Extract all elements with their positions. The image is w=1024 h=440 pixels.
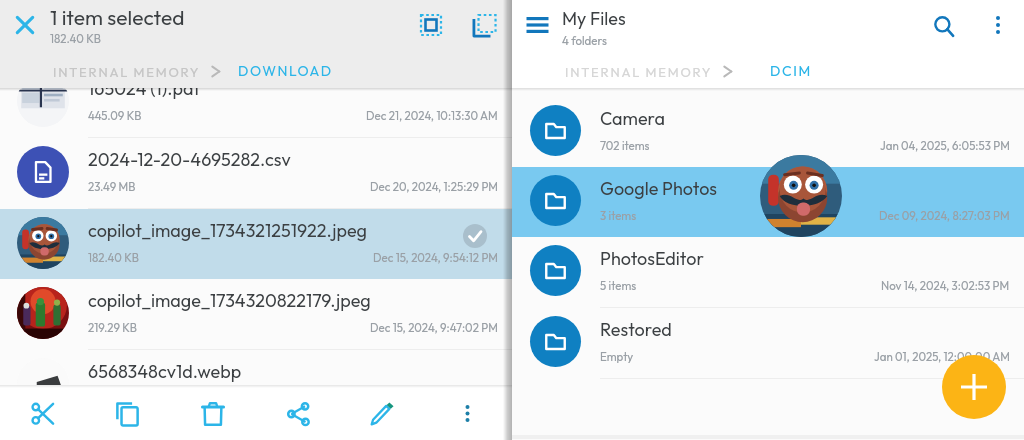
staticText: 23.49 MB: [88, 179, 136, 193]
button[interactable]: DOWNLOAD: [238, 62, 333, 80]
button[interactable]: Select all: [406, 0, 456, 50]
button[interactable]: DCIM: [770, 62, 812, 80]
button[interactable]: Google Photos: [512, 167, 1024, 237]
staticText: copilot_image_1734320822179.jpeg: [88, 289, 600, 312]
staticText: 182.40 KB: [50, 31, 101, 45]
button[interactable]: Close: [0, 0, 50, 50]
button[interactable]: PhotosEditor: [512, 237, 1024, 307]
button[interactable]: Restored: [512, 308, 1024, 378]
staticText: Restored: [600, 318, 1024, 341]
button[interactable]: Cut: [0, 385, 85, 440]
staticText: Google Photos: [600, 177, 1024, 200]
staticText: 182.40 KB: [88, 250, 139, 264]
button[interactable]: More options: [425, 385, 510, 440]
button[interactable]: 6568348cv1d.webp: [0, 350, 512, 420]
staticText: Empty: [600, 349, 634, 363]
button[interactable]: More options: [976, 1, 1020, 49]
staticText: copilot_image_1734321251922.jpeg: [88, 219, 600, 242]
button[interactable]: 2024-12-20-4695282.csv: [0, 138, 512, 208]
button[interactable]: Rename: [340, 385, 425, 440]
button[interactable]: Share: [255, 385, 340, 440]
staticText: Dec 20, 2024, 1:25:29 PM: [370, 179, 498, 193]
staticText: Dec 15, 2024, 9:47:02 PM: [370, 320, 498, 334]
staticText: 702 items: [600, 138, 650, 152]
staticText: 1 item selected: [50, 4, 185, 30]
staticText: Dec 09, 2024, 8:27:03 PM: [879, 208, 1010, 222]
staticText: 165024 (1).pdf: [88, 77, 600, 100]
staticText: 219.29 KB: [88, 320, 137, 334]
staticText: 2024-12-20-4695282.csv: [88, 148, 600, 171]
staticText: 3 items: [600, 208, 637, 222]
button[interactable]: Select items: [456, 0, 512, 50]
button[interactable]: Delete: [170, 385, 255, 440]
button[interactable]: copilot_image_1734320822179.jpeg: [0, 279, 512, 349]
button[interactable]: Menu: [512, 0, 562, 50]
button[interactable]: Copy: [85, 385, 170, 440]
staticText: My Files: [562, 7, 626, 30]
staticText: Nov 14, 2024, 3:02:53 PM: [881, 278, 1010, 292]
button[interactable]: 165024 (1).pdf: [0, 67, 512, 137]
button[interactable]: Add: [942, 355, 1006, 419]
staticText: Dec 21, 2024, 10:13:30 AM: [366, 108, 498, 122]
button[interactable]: copilot_image_1734321251922.jpeg: [0, 209, 512, 279]
staticText: Camera: [600, 107, 1024, 130]
staticText: PhotosEditor: [600, 247, 1024, 270]
button[interactable]: Camera: [512, 97, 1024, 167]
staticText: 5 items: [600, 278, 637, 292]
button[interactable]: INTERNAL MEMORY: [53, 64, 201, 80]
button[interactable]: Search: [921, 1, 969, 49]
staticText: Jan 01, 2025, 12:00:00 AM: [874, 349, 1010, 363]
staticText: Jan 04, 2025, 6:05:53 PM: [880, 138, 1010, 152]
button[interactable]: INTERNAL MEMORY: [565, 64, 713, 80]
staticText: 4 folders: [562, 33, 607, 47]
staticText: 445.09 KB: [88, 108, 142, 122]
staticText: 6568348cv1d.webp: [88, 360, 600, 383]
staticText: Dec 15, 2024, 9:54:12 PM: [373, 250, 498, 264]
